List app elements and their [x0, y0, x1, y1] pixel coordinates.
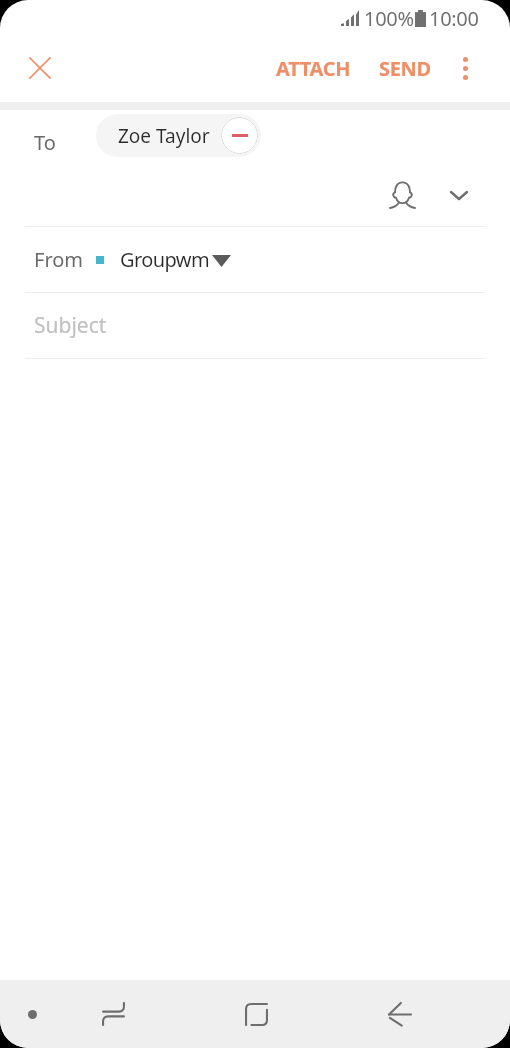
button[interactable]: More options: [442, 45, 488, 91]
staticText: ATTACH: [276, 55, 351, 82]
staticText: 10:00: [429, 5, 479, 32]
button[interactable]: From: [0, 227, 510, 292]
staticText: Subject: [34, 311, 107, 340]
staticText: 100%: [364, 5, 414, 32]
button[interactable]: Subject: [0, 293, 510, 358]
button[interactable]: Recent apps: [89, 990, 137, 1038]
button[interactable]: Voice assistant: [10, 992, 54, 1036]
staticText: From: [34, 246, 84, 273]
button[interactable]: Back: [375, 990, 423, 1038]
button[interactable]: Zoe Taylor: [96, 114, 261, 157]
staticText: To: [34, 129, 56, 156]
button[interactable]: Expand recipients: [437, 173, 481, 217]
button[interactable]: Home: [232, 990, 280, 1038]
staticText: Zoe Taylor: [118, 123, 210, 149]
button[interactable]: SEND: [370, 44, 440, 92]
staticText: Groupwm: [120, 246, 209, 273]
staticText: SEND: [379, 55, 431, 82]
button[interactable]: Close: [16, 44, 64, 92]
button[interactable]: Contacts: [380, 172, 424, 216]
button[interactable]: ATTACH: [264, 44, 362, 92]
